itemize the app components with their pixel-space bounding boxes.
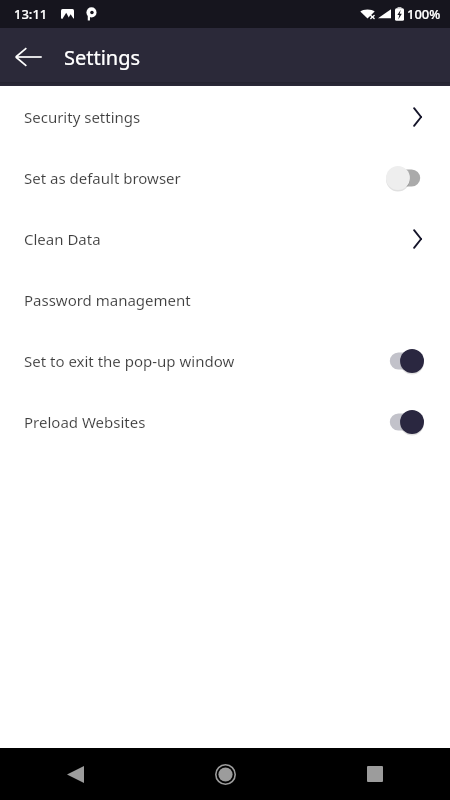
staticText: Preload Websites [24, 412, 386, 432]
staticText: 13:11 [14, 5, 48, 23]
button[interactable]: Set to exit the pop-up window [0, 330, 450, 391]
staticText: Set as default browser [24, 168, 386, 188]
button[interactable]: Back [0, 748, 150, 800]
staticText: Clean Data [24, 229, 410, 249]
staticText: Password management [24, 290, 424, 310]
button[interactable]: Clean Data [0, 208, 450, 269]
staticText: Set to exit the pop-up window [24, 351, 386, 371]
staticText: Settings [64, 44, 141, 71]
button[interactable]: Password management [0, 269, 450, 330]
button[interactable]: Preload Websites [0, 391, 450, 452]
button[interactable]: Set as default browser [0, 147, 450, 208]
staticText: Security settings [24, 107, 410, 127]
staticText: 100% [407, 5, 441, 23]
button[interactable]: Recent apps [300, 748, 450, 800]
other: Open [410, 226, 424, 252]
button[interactable]: Set to exit the pop-up window on [386, 348, 424, 374]
other: Open [410, 104, 424, 130]
button[interactable]: Preload Websites on [386, 409, 424, 435]
button[interactable]: Navigate up [0, 29, 56, 85]
button[interactable]: Security settings [0, 86, 450, 147]
button[interactable]: Home [150, 748, 300, 800]
button[interactable]: Set as default browser off [386, 165, 424, 191]
